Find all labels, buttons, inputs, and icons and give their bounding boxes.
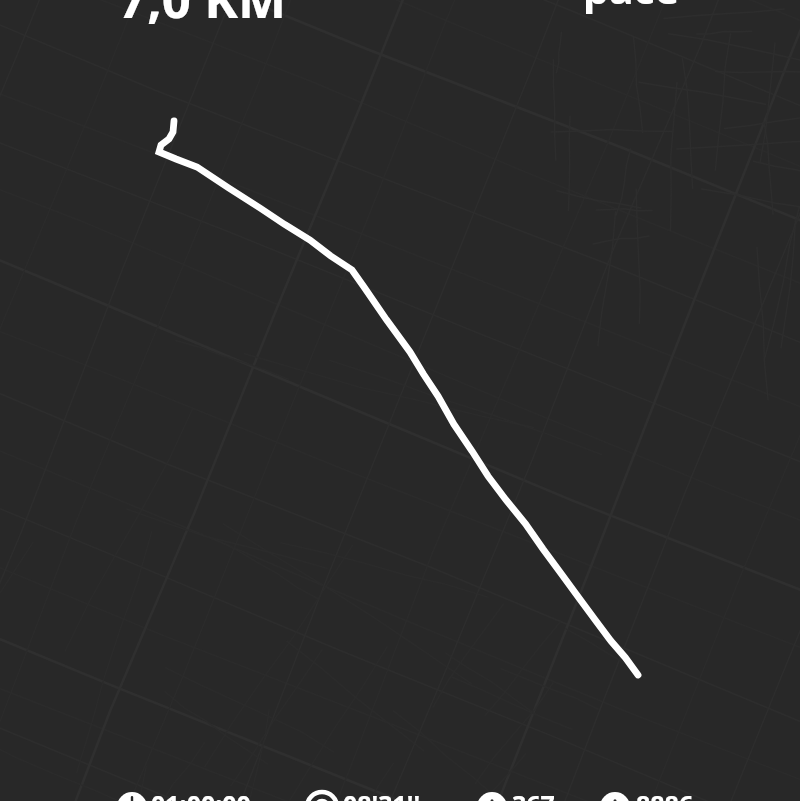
button[interactable]: Calories xyxy=(477,792,507,801)
staticText: 08'31'' xyxy=(343,787,421,801)
button[interactable]: Duration xyxy=(117,792,147,801)
staticText: pace xyxy=(583,0,680,16)
staticText: 8886 xyxy=(636,787,694,801)
button[interactable]: 7,0 KM xyxy=(118,0,287,32)
button[interactable]: Pace xyxy=(307,792,337,801)
staticText: 7,0 KM xyxy=(118,0,287,32)
staticText: 367 xyxy=(512,787,555,801)
button[interactable]: pace xyxy=(583,0,680,16)
button[interactable]: Steps xyxy=(600,792,630,801)
staticText: 01:00:00 xyxy=(151,787,251,801)
